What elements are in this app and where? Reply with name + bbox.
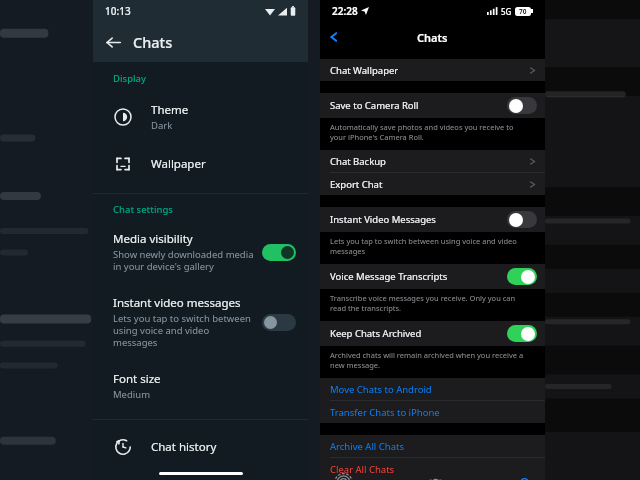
button[interactable]: Chat history	[93, 428, 308, 466]
staticText: Keep Chats Archived	[330, 327, 507, 340]
button[interactable]: Media visibility	[93, 222, 308, 282]
button[interactable]: Clear All Chats	[320, 458, 545, 480]
button[interactable]	[507, 211, 537, 228]
staticText: Move Chats to Android	[330, 383, 537, 396]
button[interactable]: Keep Chats Archived	[320, 321, 545, 346]
staticText: 10:13	[105, 4, 131, 18]
staticText: Medium	[113, 388, 151, 401]
staticText: 22:28	[332, 4, 358, 18]
staticText: Chat settings	[113, 203, 173, 216]
staticText: Font size	[113, 371, 161, 387]
staticText: Chat Wallpaper	[330, 64, 528, 77]
staticText: Wallpaper	[151, 156, 206, 172]
button[interactable]	[262, 244, 296, 261]
button[interactable]	[507, 97, 537, 114]
button[interactable]: Transfer Chats to iPhone	[320, 401, 545, 423]
button[interactable]: Back	[320, 23, 348, 51]
staticText: 5G	[501, 6, 512, 17]
button[interactable]: Font size	[93, 362, 308, 410]
staticText: Clear All Chats	[330, 463, 537, 476]
staticText: Save to Camera Roll	[330, 99, 507, 112]
staticText: Transcribe voice messages you receive. O…	[330, 293, 531, 313]
staticText: Media visibility	[113, 231, 193, 247]
button[interactable]: Save to Camera Roll	[320, 93, 545, 118]
staticText: Export Chat	[330, 178, 528, 191]
staticText: Voice Message Transcripts	[330, 270, 507, 283]
staticText: Theme	[151, 102, 189, 118]
staticText: Lets you tap to switch between using voi…	[330, 236, 531, 256]
button[interactable]: Chat Wallpaper	[320, 59, 545, 81]
staticText: Chat history	[151, 439, 217, 455]
staticText: Transfer Chats to iPhone	[330, 406, 537, 419]
button[interactable]: Archive All Chats	[320, 435, 545, 457]
staticText: Chats	[417, 30, 448, 45]
staticText: 70	[519, 7, 527, 16]
button[interactable]	[507, 325, 537, 342]
staticText: Instant Video Messages	[330, 213, 507, 226]
button[interactable]: Back	[93, 22, 133, 62]
staticText: Archived chats will remain archived when…	[330, 350, 531, 370]
other: Chat history	[113, 437, 133, 457]
other: Wallpaper	[113, 154, 133, 174]
button[interactable]	[262, 314, 296, 331]
button[interactable]: Instant Video Messages	[320, 207, 545, 232]
button[interactable]: Wallpaper	[93, 145, 308, 183]
button[interactable]: Move Chats to Android	[320, 378, 545, 400]
staticText: Archive All Chats	[330, 440, 537, 453]
button[interactable]: Theme	[93, 93, 308, 141]
staticText: Automatically save photos and videos you…	[330, 122, 531, 142]
staticText: Chats	[133, 32, 173, 52]
button[interactable]: Voice Message Transcripts	[320, 264, 545, 289]
button[interactable]: Export Chat	[320, 173, 545, 195]
button[interactable]: Instant video messages	[93, 286, 308, 358]
staticText: Dark	[151, 119, 173, 132]
button[interactable]: Chat Backup	[320, 150, 545, 172]
staticText: Show newly downloaded media in your devi…	[113, 248, 254, 273]
staticText: Instant video messages	[113, 295, 241, 311]
staticText: Lets you tap to switch between using voi…	[113, 312, 254, 349]
other: Theme	[113, 107, 133, 127]
button[interactable]	[507, 268, 537, 285]
staticText: Display	[113, 72, 147, 85]
staticText: Chat Backup	[330, 155, 528, 168]
